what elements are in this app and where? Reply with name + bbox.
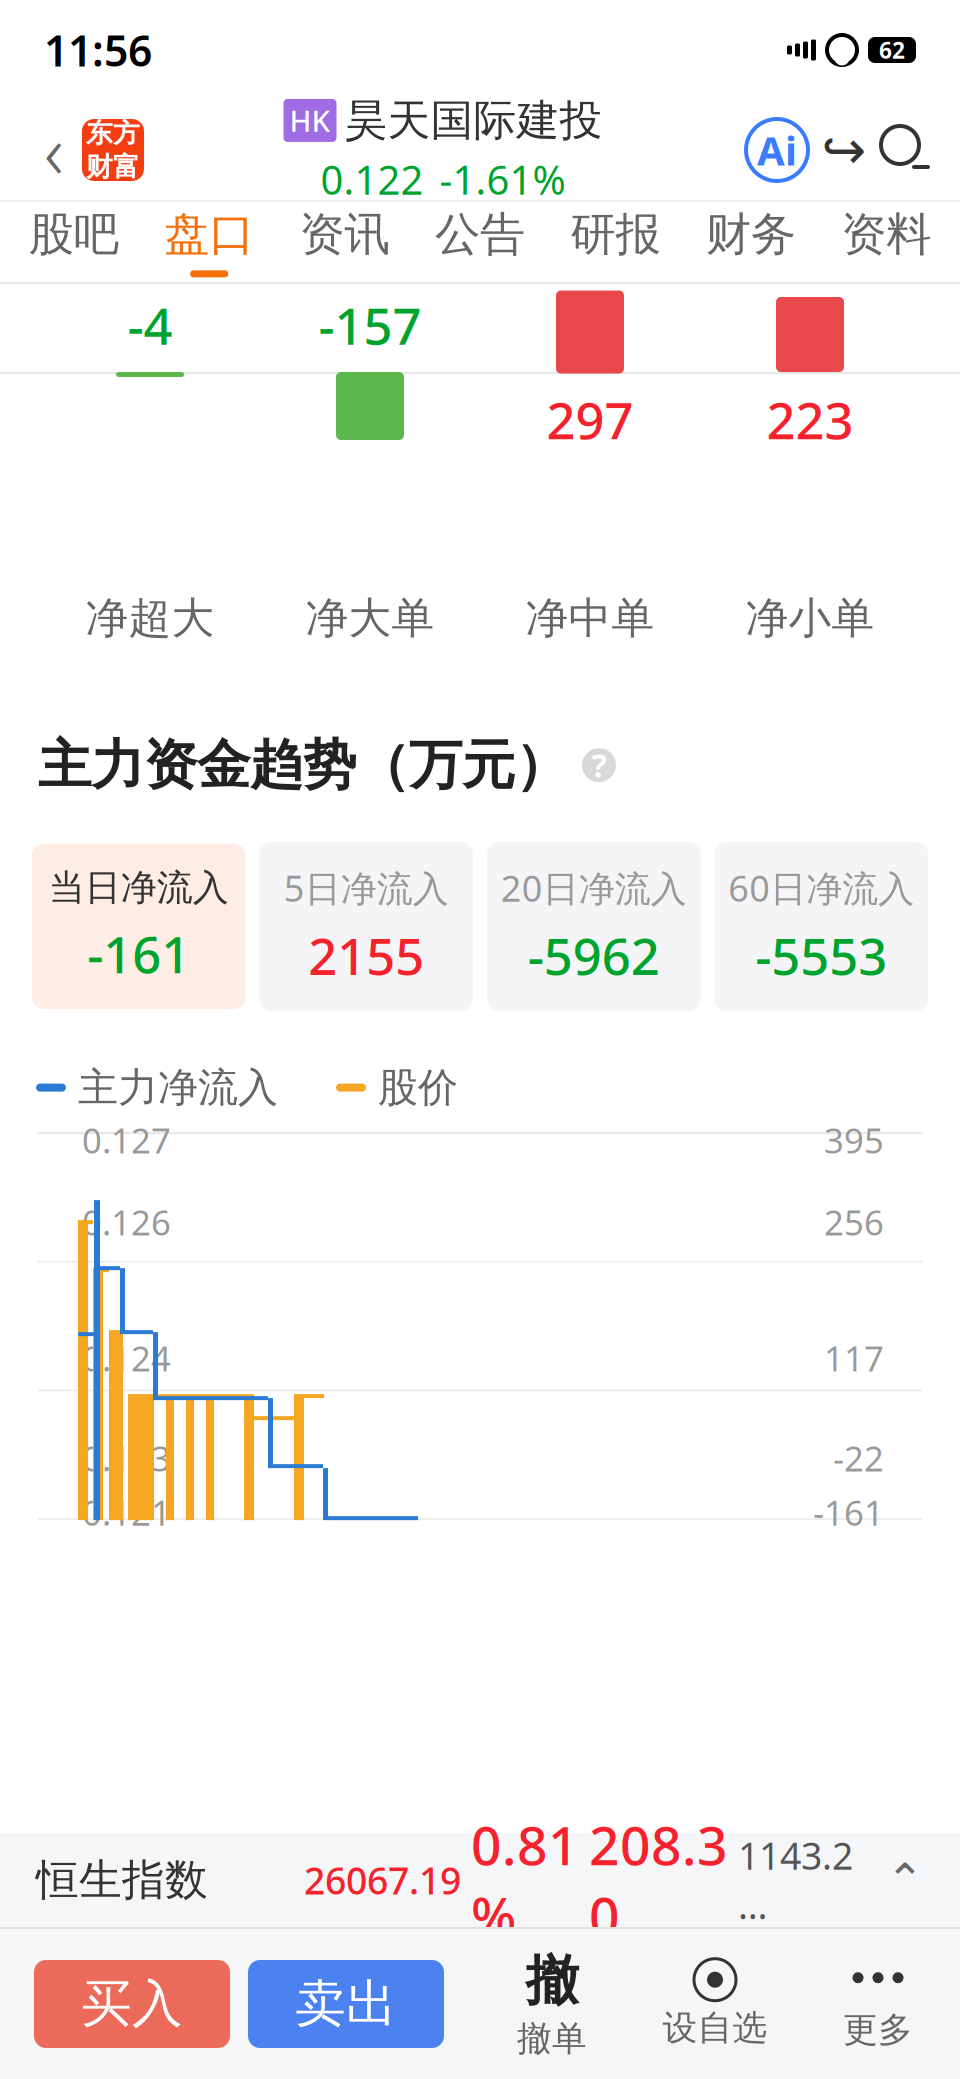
staticText: ↪ [821,120,866,180]
staticText: 净大单 [305,592,434,644]
button[interactable]: 卖出 [248,1960,444,2048]
staticText: 更多 [843,2009,913,2051]
staticText: 昊天国际建投 [344,94,602,147]
button[interactable]: 分享 [812,115,876,185]
button[interactable]: 恒生指数 [0,1833,960,1927]
staticText: 净超大 [85,592,214,644]
button[interactable]: 设自选 [660,1954,770,2054]
staticText: -161 [813,1489,884,1535]
staticText: 资讯 [300,207,390,262]
staticText: 62 [879,35,905,65]
button[interactable]: 买入 [34,1960,230,2048]
staticText: 0.81% [471,1809,579,1951]
staticText: 0.127 [82,1117,171,1163]
staticText: 0.121 [82,1489,171,1535]
button[interactable]: AI 助手 [742,115,812,185]
staticText: Ai [757,123,797,176]
staticText: 撤 [525,1948,578,2013]
button[interactable]: 更多 [830,1954,926,2054]
staticText: 当日净流入 [49,866,229,910]
staticText: ? [591,744,606,786]
staticText: 60日净流入 [728,864,914,912]
staticText: 395 [824,1117,884,1163]
staticText: 297 [546,386,633,453]
staticText: -157 [318,291,421,359]
button[interactable]: 60日净流入 [714,842,928,1011]
staticText: 财务 [706,207,796,262]
button[interactable]: 公告 [412,202,548,282]
button[interactable]: 搜索 [876,115,934,185]
button[interactable]: 东方财富 [82,119,144,181]
staticText: ⌃ [886,1854,924,1906]
staticText: 研报 [570,207,660,262]
staticText: HK [289,101,330,140]
staticText: 恒生指数 [36,1854,208,1906]
button[interactable]: 财务 [683,202,818,282]
staticText: 主力净流入 [78,1063,278,1112]
staticText: 0.122 [320,153,423,206]
staticText: 26067.19 [304,1855,461,1905]
staticText: 223 [766,386,853,453]
staticText: 撤单 [517,2017,587,2060]
staticText: 财富 [86,150,140,183]
staticText: 买入 [81,1973,183,2035]
button[interactable]: 5日净流入 [259,842,473,1011]
staticText: 0.124 [82,1335,171,1381]
staticText: 盘口 [164,207,254,262]
staticText: 20日净流入 [501,864,687,912]
staticText: 117 [824,1335,884,1381]
staticText: 2155 [308,922,424,989]
button[interactable]: 研报 [548,202,683,282]
staticText: 11:56 [44,22,152,78]
staticText: 1143.2… [738,1830,853,1930]
button[interactable]: 撤 [504,1954,600,2054]
button[interactable]: 资讯 [277,202,412,282]
staticText: 净小单 [745,592,874,644]
button[interactable]: 20日净流入 [487,842,700,1011]
staticText: 卖出 [295,1973,397,2035]
staticText: -1.61% [439,153,565,206]
staticText: 东方 [86,117,140,149]
staticText: 主力资金趋势（万元） [38,732,568,798]
staticText: 净中单 [525,592,654,644]
button[interactable]: 盘口 [141,202,277,282]
staticText: 208.30 [589,1809,728,1951]
staticText: 0.123 [82,1435,171,1481]
button[interactable]: 返回 [26,115,82,185]
staticText: -5553 [755,922,887,989]
button[interactable]: 股吧 [6,202,141,282]
staticText: 0.126 [82,1199,171,1245]
staticText: -4 [127,291,172,359]
button[interactable]: 说明 [582,744,616,786]
button[interactable]: 当日净流入 [32,844,245,1009]
staticText: ‹ [44,100,64,200]
staticText: -5962 [528,922,660,989]
staticText: -161 [87,920,190,987]
staticText: 5日净流入 [284,864,449,912]
staticText: 设自选 [662,2007,767,2049]
button[interactable]: 资料 [819,202,954,282]
staticText: -22 [833,1435,884,1481]
staticText: 256 [824,1199,884,1245]
staticText: 公告 [435,207,525,262]
staticText: 股吧 [29,207,119,262]
staticText: 股价 [378,1063,458,1112]
staticText: 资料 [841,207,931,262]
